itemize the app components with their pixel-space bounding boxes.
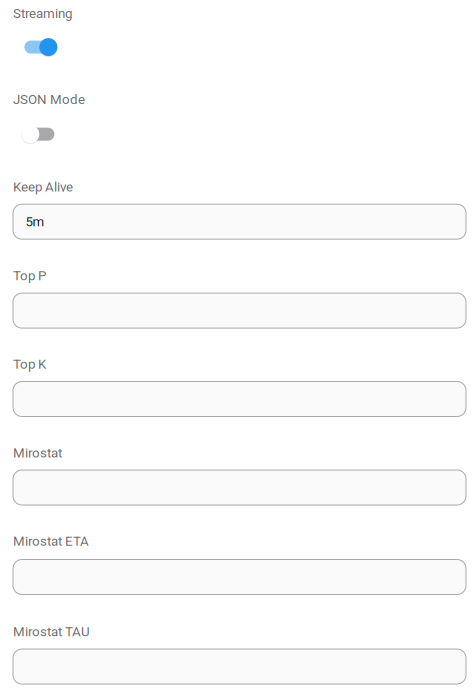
button[interactable]: Top K <box>13 381 466 416</box>
button[interactable]: Mirostat TAU <box>13 649 466 684</box>
staticText: Mirostat ETA <box>13 533 89 549</box>
staticText: Top K <box>13 356 46 372</box>
button[interactable]: JSON Mode <box>21 125 57 144</box>
staticText: 5m <box>25 214 44 229</box>
button[interactable]: Top P <box>13 293 466 328</box>
button[interactable]: Mirostat <box>13 470 466 505</box>
staticText: Mirostat <box>13 445 62 461</box>
button[interactable]: Mirostat ETA <box>13 559 466 594</box>
staticText: Top P <box>13 268 46 284</box>
staticText: JSON Mode <box>13 92 85 107</box>
staticText: Keep Alive <box>13 179 73 195</box>
button[interactable]: Keep Alive <box>13 204 466 239</box>
staticText: Mirostat TAU <box>13 624 90 639</box>
button[interactable]: Streaming <box>21 38 57 57</box>
staticText: Streaming <box>13 6 72 21</box>
